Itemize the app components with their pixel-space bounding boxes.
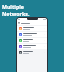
button[interactable]: Open network: [17, 44, 47, 49]
button[interactable]: Open network: [17, 38, 47, 43]
button[interactable]: Menu: [17, 21, 47, 25]
button[interactable]: Open network: [17, 50, 47, 55]
button[interactable]: Open network: [17, 32, 47, 37]
other: Menu: [18, 22, 20, 24]
staticText: Networks.: [2, 10, 30, 17]
button[interactable]: Open network: [17, 26, 47, 31]
staticText: Multiple: [2, 3, 24, 10]
